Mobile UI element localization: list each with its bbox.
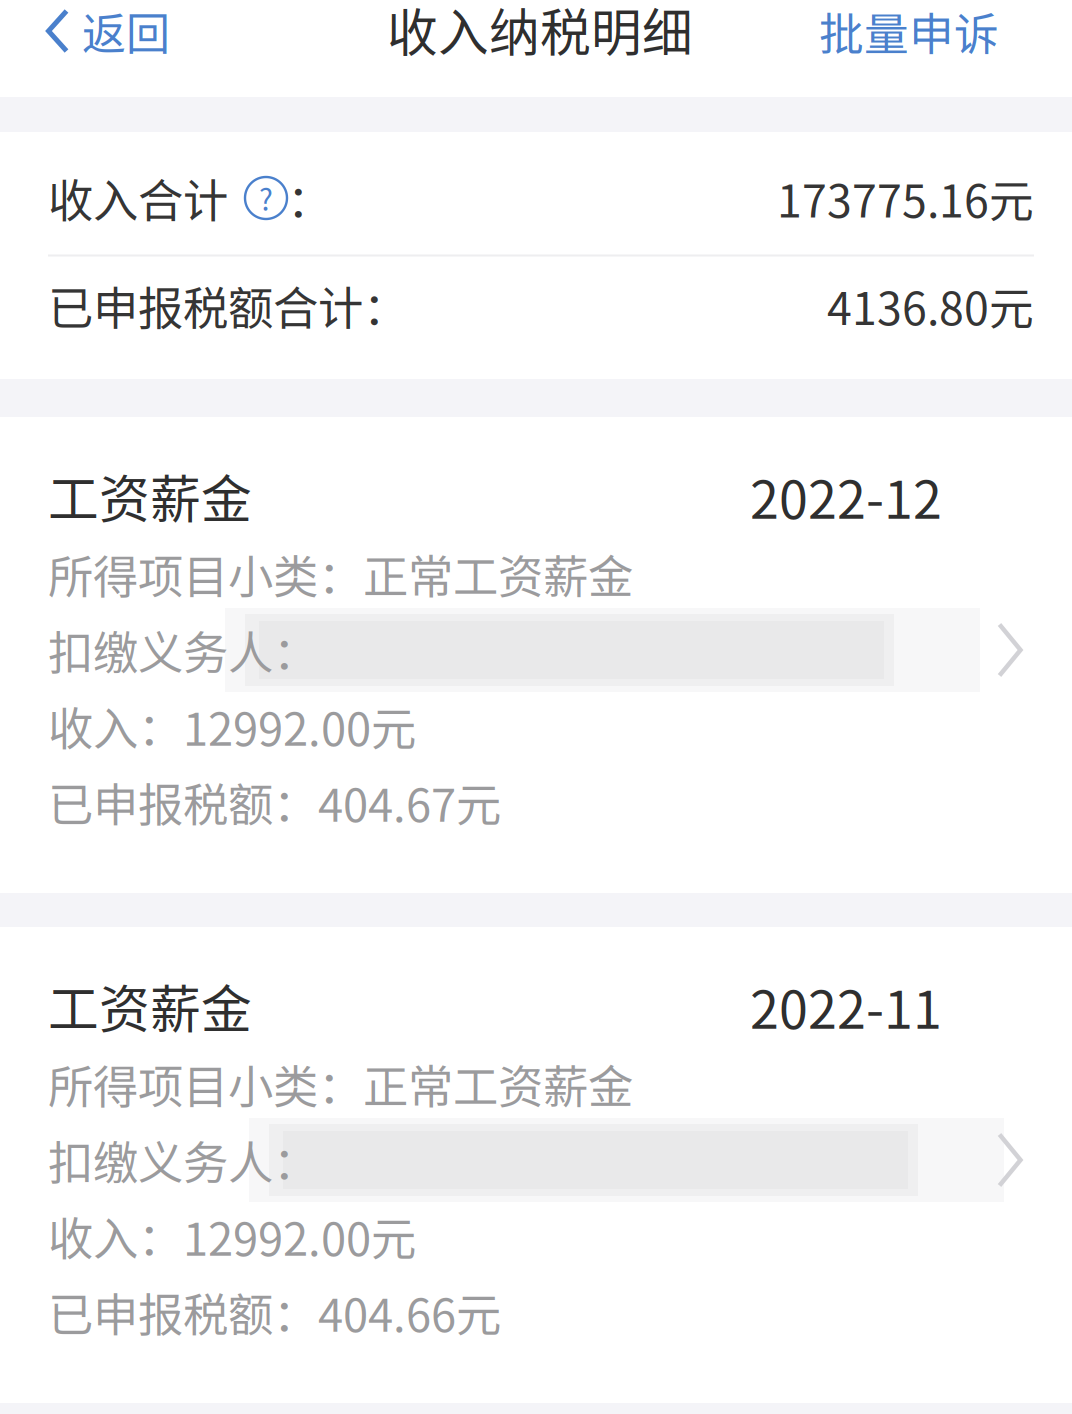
staticText: 工资薪金 [48, 969, 252, 1043]
staticText: ： [287, 165, 332, 231]
staticText: 工资薪金 [48, 459, 252, 533]
button[interactable]: 工资薪金 [0, 417, 1072, 893]
staticText: 173775.16元 [777, 166, 1034, 230]
staticText: 已申报税额合计： [48, 273, 408, 338]
staticText: 返回 [82, 0, 170, 63]
staticText: 4136.80元 [827, 273, 1034, 338]
staticText: 所得项目小类：正常工资薪金 [48, 541, 633, 607]
button[interactable]: 批量申诉 [797, 0, 1072, 97]
staticText: ? [259, 177, 273, 219]
staticText: 扣缴义务人： [48, 617, 318, 683]
button[interactable]: 收入合计说明 [245, 177, 287, 219]
staticText: 收入合计 [48, 165, 228, 231]
staticText: 收入纳税明细 [387, 0, 693, 66]
button[interactable]: 工资薪金 [0, 927, 1072, 1403]
staticText: 2022-12 [750, 458, 942, 534]
staticText: 收入：12992.00元 [48, 693, 416, 759]
staticText: 收入：12992.00元 [48, 1203, 416, 1269]
staticText: 批量申诉 [819, 0, 999, 63]
staticText: 扣缴义务人： [48, 1127, 318, 1193]
staticText: 已申报税额：404.66元 [48, 1279, 501, 1345]
button[interactable]: 返回 [0, 0, 192, 97]
staticText: 已申报税额：404.67元 [48, 769, 501, 835]
staticText: 所得项目小类：正常工资薪金 [48, 1051, 633, 1117]
staticText: 2022-11 [750, 968, 942, 1044]
